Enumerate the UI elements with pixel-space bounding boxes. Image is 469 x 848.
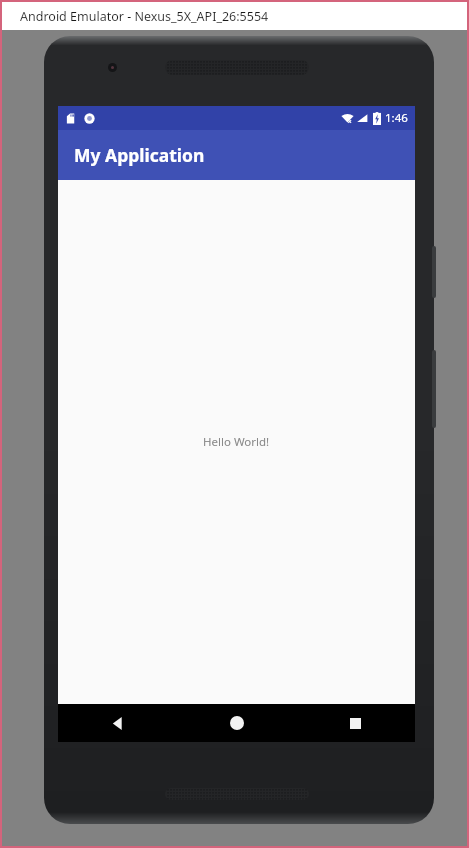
button[interactable]: Recent apps [296,704,415,742]
staticText: My Application [74,143,205,167]
staticText: Hello World! [203,434,270,450]
button[interactable]: Back [58,704,177,742]
staticText: 1:46 [385,110,408,126]
staticText: Android Emulator - Nexus_5X_API_26:5554 [20,8,269,25]
button[interactable]: Home [177,704,296,742]
